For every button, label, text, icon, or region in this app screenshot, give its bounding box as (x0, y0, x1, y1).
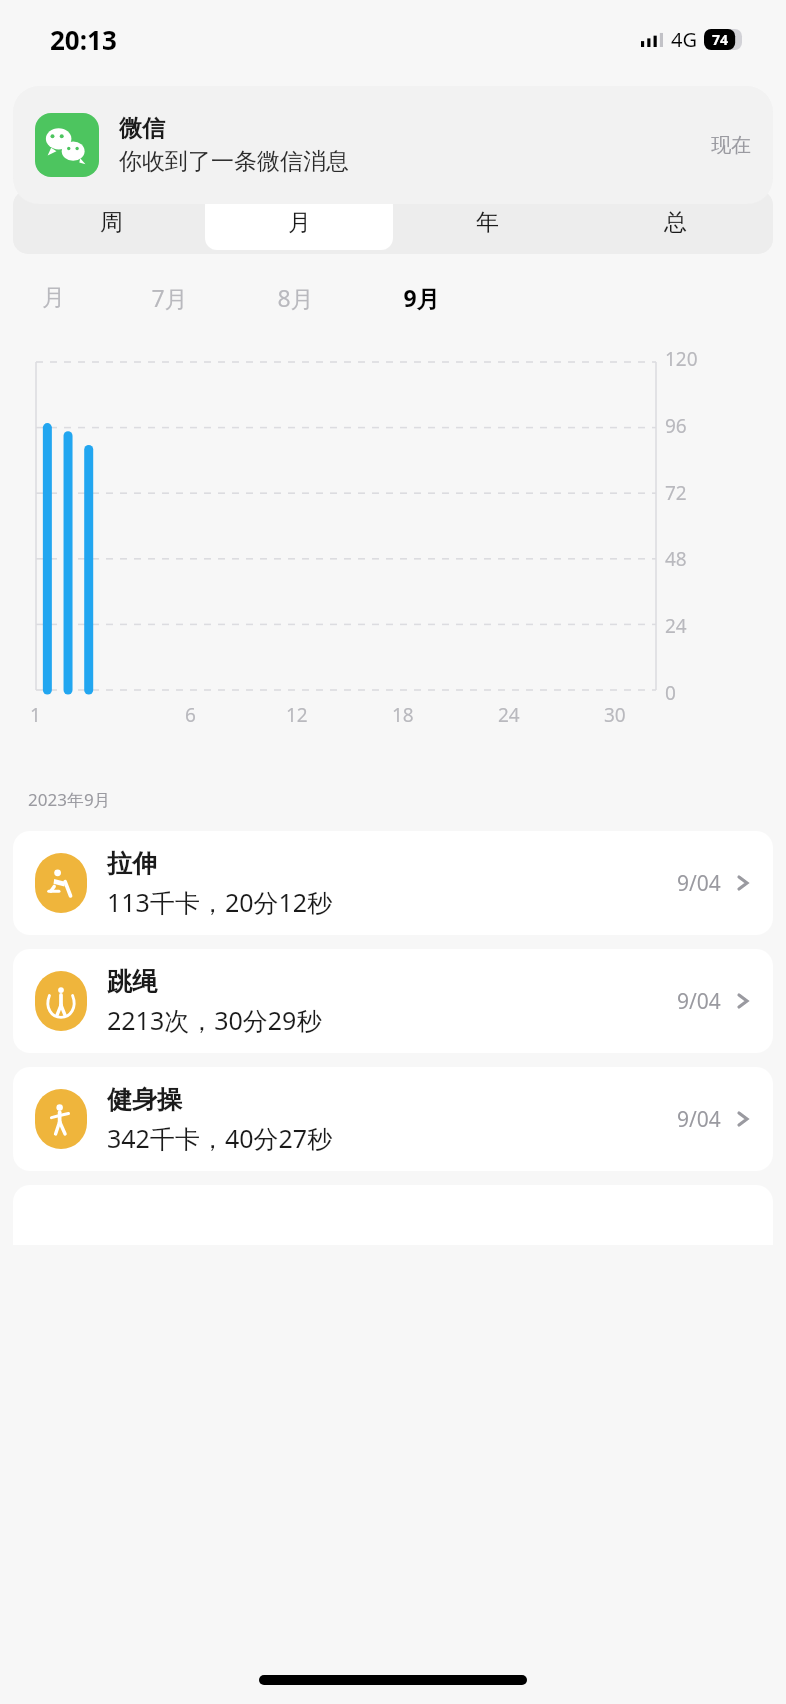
staticText: 微信 (119, 114, 165, 143)
staticText: 48 (665, 546, 687, 572)
staticText: 1 (30, 702, 41, 728)
staticText: 24 (498, 702, 520, 728)
staticText: 9/04 (677, 1105, 721, 1134)
staticText: 0 (665, 680, 676, 706)
button[interactable]: 月 (0, 276, 106, 318)
button[interactable]: 8月 (232, 276, 358, 318)
staticText: 8月 (277, 282, 314, 313)
button[interactable]: 月 (205, 194, 393, 250)
staticText: 总 (664, 208, 687, 237)
staticText: 9月 (403, 282, 440, 313)
other: Open workout detail (735, 993, 751, 1009)
staticText: 113千卡，20分12秒 (107, 885, 333, 919)
staticText: 年 (476, 208, 499, 237)
staticText: 4G (671, 26, 697, 53)
staticText: 6 (185, 702, 196, 728)
button[interactable]: 总 (581, 194, 769, 250)
staticText: 7月 (151, 282, 188, 313)
button[interactable]: 跳绳 (13, 949, 773, 1053)
other: Open workout detail (735, 875, 751, 891)
staticText: 20:13 (50, 22, 117, 57)
staticText: 9/04 (677, 869, 721, 898)
staticText: 月 (288, 208, 311, 237)
other: Open workout detail (735, 1111, 751, 1127)
button[interactable]: 年 (393, 194, 581, 250)
staticText: 跳绳 (107, 966, 157, 997)
staticText: 12 (286, 702, 308, 728)
staticText: 2023年9月 (28, 788, 111, 811)
staticText: 120 (665, 346, 698, 372)
staticText: 18 (392, 702, 414, 728)
staticText: 72 (665, 480, 687, 506)
button[interactable]: 周 (17, 194, 205, 250)
button[interactable]: 健身操 (13, 1067, 773, 1171)
staticText: 现在 (711, 133, 751, 158)
staticText: 24 (665, 613, 687, 639)
button[interactable]: 拉伸 (13, 831, 773, 935)
staticText: 74 (712, 30, 729, 49)
staticText: 9/04 (677, 987, 721, 1016)
button[interactable]: 微信 (13, 86, 773, 204)
staticText: 342千卡，40分27秒 (107, 1121, 333, 1155)
button[interactable]: 9月 (358, 276, 484, 318)
staticText: 周 (100, 208, 123, 237)
staticText: 拉伸 (107, 848, 157, 879)
staticText: 月 (42, 283, 65, 312)
button[interactable]: 7月 (106, 276, 232, 318)
staticText: 你收到了一条微信消息 (119, 147, 349, 176)
staticText: 2213次，30分29秒 (107, 1003, 322, 1037)
staticText: 96 (665, 413, 687, 439)
staticText: 30 (604, 702, 626, 728)
staticText: 健身操 (107, 1084, 182, 1115)
